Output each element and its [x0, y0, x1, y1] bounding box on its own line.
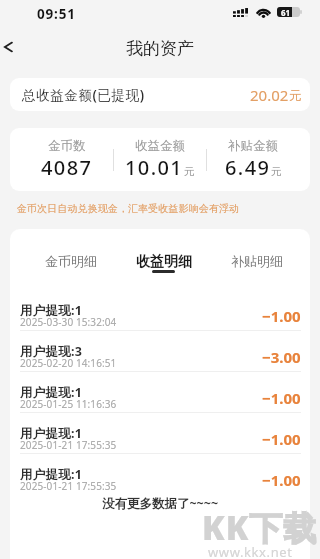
- staticText: 元: [271, 165, 282, 178]
- staticText: 4087: [41, 154, 93, 181]
- staticText: 2025-01-21 17:55:35: [20, 438, 117, 452]
- staticText: 元: [184, 165, 195, 178]
- staticText: −1.00: [262, 470, 301, 490]
- staticText: −1.00: [262, 388, 301, 408]
- staticText: www.kkx.net: [208, 543, 293, 559]
- staticText: 金币明细: [45, 253, 97, 269]
- staticText: 2025-01-25 11:16:36: [20, 397, 117, 411]
- button[interactable]: 收益明细: [117, 229, 210, 290]
- staticText: 我的资产: [126, 38, 194, 59]
- button[interactable]: 用户提现:1: [10, 372, 310, 413]
- staticText: 09:51: [37, 5, 76, 23]
- button[interactable]: 用户提现:1: [10, 454, 310, 495]
- staticText: 收益明细: [136, 253, 192, 271]
- staticText: 用户提现:3: [20, 343, 83, 360]
- button[interactable]: 用户提现:1: [10, 290, 310, 331]
- button[interactable]: 补贴明细: [210, 229, 303, 290]
- staticText: 收益金额: [135, 138, 185, 154]
- button[interactable]: 总收益金额(已提现): [10, 78, 310, 111]
- staticText: 用户提现:1: [20, 466, 83, 483]
- staticText: 用户提现:1: [20, 384, 83, 401]
- staticText: −3.00: [262, 347, 301, 367]
- staticText: 补贴明细: [231, 253, 283, 269]
- staticText: 2025-01-21 17:55:35: [20, 479, 117, 493]
- staticText: 2025-03-30 15:32:04: [20, 315, 117, 329]
- staticText: 金币次日自动兑换现金，汇率受收益影响会有浮动: [17, 202, 240, 215]
- staticText: 没有更多数据了~~~~: [10, 495, 310, 512]
- button[interactable]: 返回: [0, 33, 28, 61]
- staticText: 20.02: [250, 85, 289, 105]
- button[interactable]: 用户提现:1: [10, 413, 310, 454]
- staticText: 61: [281, 7, 291, 17]
- button[interactable]: 金币明细: [24, 229, 117, 290]
- staticText: 总收益金额(已提现): [22, 86, 145, 104]
- staticText: 补贴金额: [228, 138, 278, 154]
- staticText: 用户提现:1: [20, 302, 83, 319]
- staticText: 用户提现:1: [20, 425, 83, 442]
- staticText: 6.49: [225, 154, 271, 181]
- staticText: KK下载: [202, 505, 318, 550]
- staticText: −1.00: [262, 429, 301, 449]
- staticText: 金币数: [48, 138, 86, 154]
- staticText: 元: [289, 88, 302, 104]
- staticText: 10.01: [125, 154, 184, 181]
- button[interactable]: 用户提现:3: [10, 331, 310, 372]
- staticText: 2025-02-20 14:16:51: [20, 356, 117, 370]
- staticText: −1.00: [262, 306, 301, 326]
